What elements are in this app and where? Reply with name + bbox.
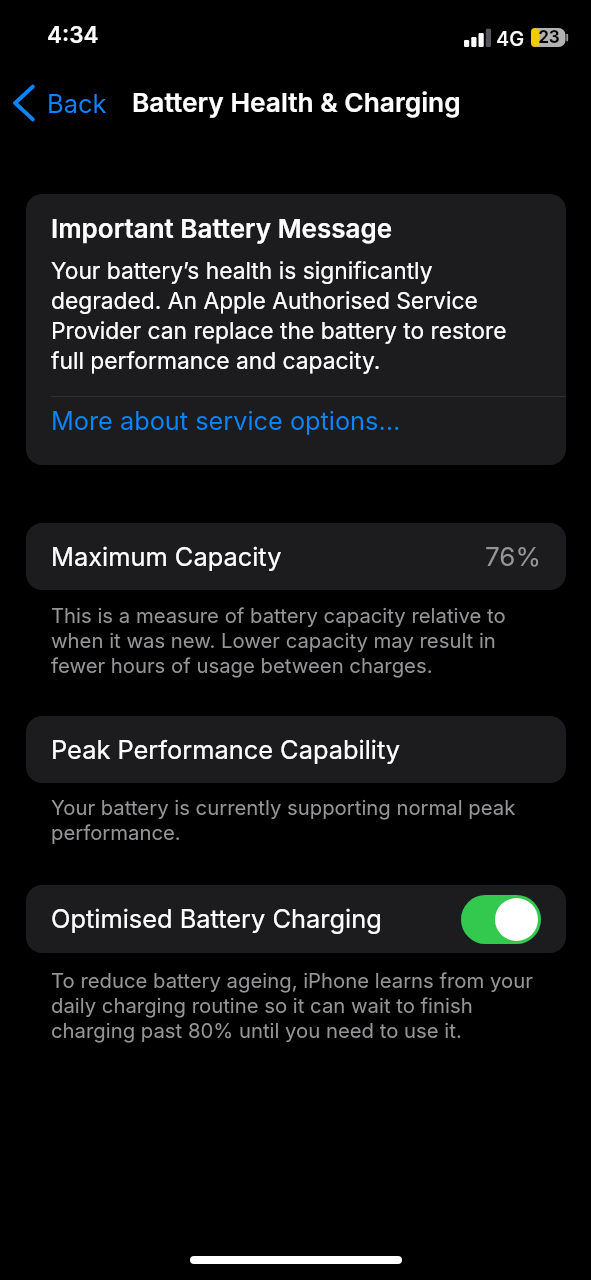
staticText: To reduce battery ageing, iPhone learns …	[51, 968, 551, 1043]
staticText: More about service options…	[51, 404, 401, 436]
staticText: Maximum Capacity	[51, 542, 282, 572]
staticText: Your battery is currently supporting nor…	[51, 795, 551, 845]
staticText: This is a measure of battery capacity re…	[51, 603, 551, 678]
staticText: 23	[538, 29, 560, 47]
button[interactable]: Back	[5, 77, 117, 129]
button[interactable]: Maximum Capacity	[26, 523, 566, 590]
button[interactable]: More about service options…	[26, 397, 566, 465]
staticText: 4:34	[47, 21, 99, 49]
staticText: 4G	[496, 29, 525, 50]
button[interactable]: Peak Performance Capability	[26, 716, 566, 783]
staticText: Your battery’s health is significantly d…	[51, 255, 519, 375]
staticText: 76%	[485, 542, 541, 572]
staticText: Optimised Battery Charging	[51, 904, 382, 934]
staticText: Battery Health & Charging	[132, 86, 461, 118]
staticText: Back	[47, 87, 107, 119]
button[interactable]: Optimised Battery Charging toggle	[461, 895, 541, 944]
staticText: Important Battery Message	[51, 213, 393, 244]
button[interactable]: Optimised Battery Charging	[26, 885, 566, 953]
staticText: Peak Performance Capability	[51, 735, 401, 765]
